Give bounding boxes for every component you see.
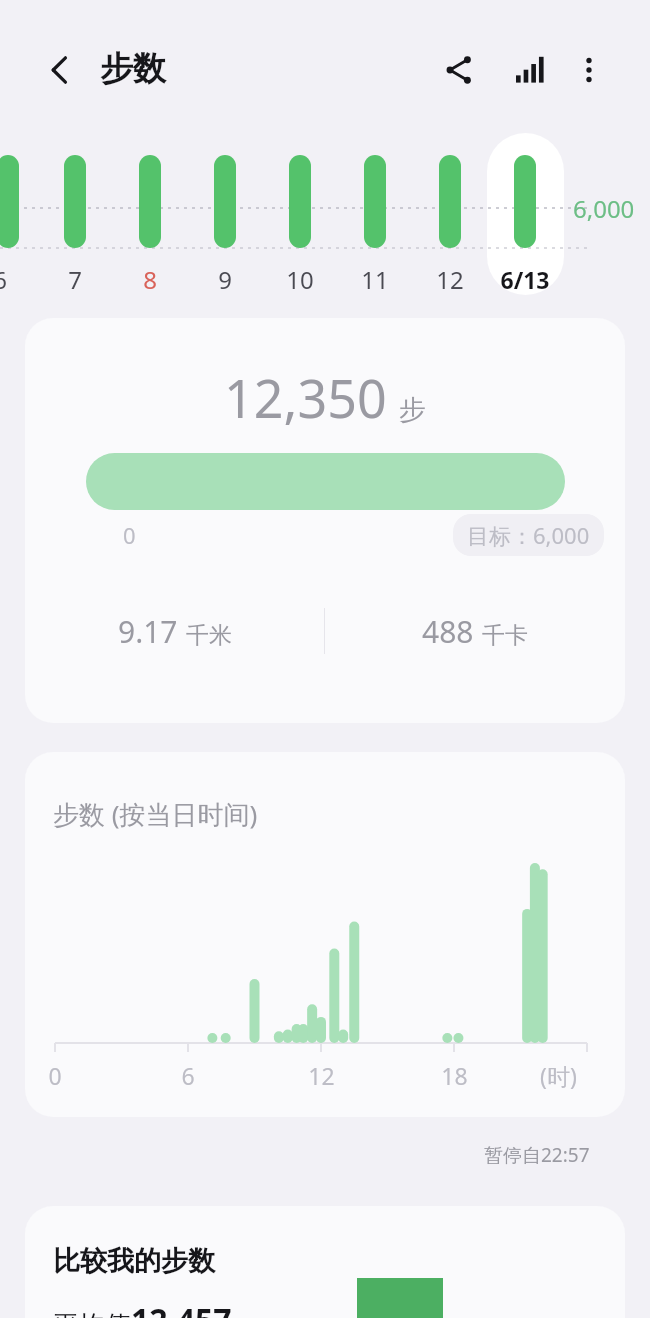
staticText: 18 [441,1060,468,1091]
button[interactable]: Share [430,41,488,99]
staticText: 12 [436,263,464,296]
staticText: 488 [422,611,474,652]
staticText: 步数 [100,48,166,90]
staticText: 暂停自22:57 [484,1142,590,1168]
staticText: 千米 [186,621,232,650]
button[interactable]: 12,350 [25,318,625,723]
button[interactable]: Chart [499,41,557,99]
staticText: 9 [218,263,232,296]
staticText: 步 [399,393,426,427]
staticText: 目标：6,000 [467,520,590,550]
button[interactable]: Back [30,40,90,100]
staticText: 8 [143,263,157,296]
button[interactable]: 比较我的步数 [25,1206,625,1318]
staticText: 6,000 [573,192,635,225]
staticText: 比较我的步数 [53,1244,215,1278]
staticText: 6 [0,263,7,296]
staticText: 12,350 [224,362,387,433]
staticText: 0 [123,520,136,550]
staticText: 平均值 [53,1309,131,1318]
button[interactable]: More options [560,41,618,99]
staticText: 6 [181,1060,195,1091]
staticText: 6/13 [500,264,550,295]
staticText: 12,457 [131,1298,232,1318]
staticText: 12 [308,1060,335,1091]
staticText: (时) [540,1060,577,1091]
staticText: 9.17 [118,611,178,652]
button[interactable] [487,133,564,295]
staticText: 7 [68,263,82,296]
staticText: 11 [361,263,389,296]
staticText: 步数 (按当日时间) [53,796,258,832]
staticText: 千卡 [482,621,528,650]
button[interactable]: 步数 (按当日时间) [25,752,625,1117]
staticText: 0 [48,1060,62,1091]
staticText: 10 [286,263,314,296]
